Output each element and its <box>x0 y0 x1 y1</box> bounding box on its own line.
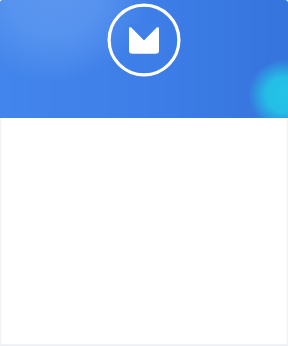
button[interactable]: Mail <box>104 0 184 80</box>
